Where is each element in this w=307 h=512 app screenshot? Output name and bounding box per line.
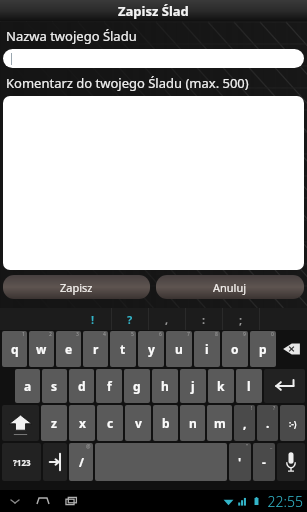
staticText: Anuluj (213, 280, 247, 295)
button[interactable]: @ (69, 443, 93, 481)
button[interactable]: ; (223, 308, 259, 330)
button[interactable]: 4 (83, 331, 108, 367)
staticText: x (79, 415, 86, 431)
staticText: Zapisz (60, 280, 93, 295)
button[interactable]: m (207, 405, 232, 441)
staticText: ?123 (13, 457, 31, 468)
staticText: : (202, 312, 206, 327)
staticText: z (51, 415, 57, 431)
button[interactable]: 6 (138, 331, 164, 367)
staticText: 7 (187, 331, 190, 338)
button[interactable]: j (180, 369, 206, 403)
button[interactable]: Anuluj (156, 275, 304, 299)
button[interactable]: f (96, 369, 122, 403)
button[interactable]: Backspace (278, 331, 305, 367)
button[interactable]: z (41, 405, 67, 441)
button[interactable]: _ (253, 443, 275, 481)
button[interactable]: , (149, 308, 185, 330)
button[interactable]: Enter (264, 369, 305, 403)
button[interactable]: 7 (166, 331, 192, 367)
staticText: s (51, 378, 58, 394)
staticText: 2 (49, 331, 52, 338)
staticText: ! (251, 405, 253, 412)
staticText: m (214, 415, 226, 431)
button[interactable]: a (15, 369, 40, 403)
staticText: Zapisz Ślad (118, 2, 189, 20)
staticText: " (246, 443, 249, 450)
staticText: r (93, 341, 99, 357)
staticText: f (107, 378, 112, 394)
staticText: ! (91, 312, 95, 327)
button[interactable]: 9 (222, 331, 248, 367)
staticText: 4 (103, 331, 106, 338)
button[interactable]: 8 (194, 331, 220, 367)
button[interactable]: s (42, 369, 67, 403)
button[interactable]: ! (75, 308, 111, 330)
button[interactable]: Back (6, 492, 24, 510)
button[interactable]: 5 (110, 331, 136, 367)
button[interactable]: v (125, 405, 151, 441)
button[interactable]: 1 (2, 331, 27, 367)
staticText: 9 (243, 331, 246, 338)
button[interactable]: b (153, 405, 178, 441)
button[interactable]: h (152, 369, 178, 403)
button[interactable]: l (236, 369, 262, 403)
button[interactable]: d (69, 369, 94, 403)
staticText: g (133, 378, 141, 394)
button[interactable]: ? (112, 308, 148, 330)
button[interactable]: ?123 (2, 443, 41, 481)
button[interactable]: ? (257, 405, 278, 441)
button[interactable]: Zapisz (3, 275, 150, 299)
staticText: h (161, 378, 169, 394)
button[interactable]: k (208, 369, 234, 403)
staticText: 22:55 (267, 492, 303, 511)
button[interactable]: Voice input (277, 443, 305, 481)
button[interactable]: Tab (43, 443, 67, 481)
button[interactable]: " (229, 443, 251, 481)
button[interactable]: : (186, 308, 222, 330)
staticText: :-) (289, 418, 297, 429)
staticText: d (78, 378, 86, 394)
button[interactable]: x (69, 405, 95, 441)
staticText: Komentarz do twojego Śladu (max. 500) (6, 74, 249, 92)
staticText: ; (239, 312, 243, 327)
button[interactable]: 0 (250, 331, 276, 367)
button[interactable] (3, 49, 304, 68)
button[interactable]: Recent apps (62, 492, 80, 510)
button[interactable]: c (97, 405, 123, 441)
button[interactable] (3, 96, 304, 270)
staticText: . (266, 415, 270, 431)
button[interactable]: g (124, 369, 150, 403)
button[interactable]: ! (234, 405, 255, 441)
staticText: k (217, 378, 225, 394)
staticText: v (135, 415, 142, 431)
staticText: j (191, 378, 195, 394)
staticText: o (231, 341, 239, 357)
staticText: 8 (215, 331, 218, 338)
staticText: - (262, 454, 266, 470)
staticText: Nazwa twojego Śladu (6, 27, 137, 45)
staticText: _ (270, 443, 273, 450)
staticText: , (243, 415, 247, 431)
staticText: l (247, 378, 251, 394)
staticText: a (24, 378, 32, 394)
staticText: 6 (159, 331, 162, 338)
staticText: / (79, 454, 84, 470)
staticText: w (36, 341, 47, 357)
button[interactable]: n (180, 405, 205, 441)
staticText: n (189, 415, 197, 431)
staticText: u (175, 341, 183, 357)
button[interactable]: 2 (29, 331, 54, 367)
button[interactable]: 3 (56, 331, 81, 367)
staticText: , (165, 312, 169, 327)
staticText: 1 (22, 331, 25, 338)
staticText: @ (86, 443, 91, 450)
button[interactable]: :-) (280, 405, 305, 441)
staticText: 3 (76, 331, 79, 338)
button[interactable]: Home (34, 492, 52, 510)
button[interactable]: Shift (2, 405, 39, 441)
staticText: t (120, 341, 126, 357)
staticText: ? (127, 312, 133, 327)
